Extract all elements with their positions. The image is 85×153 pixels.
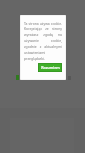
staticText: Rozumiem [41,65,60,70]
button[interactable]: Rozumiem [38,63,62,72]
staticText: Ta strona używa cookie. Korzystając ze s… [24,21,62,61]
